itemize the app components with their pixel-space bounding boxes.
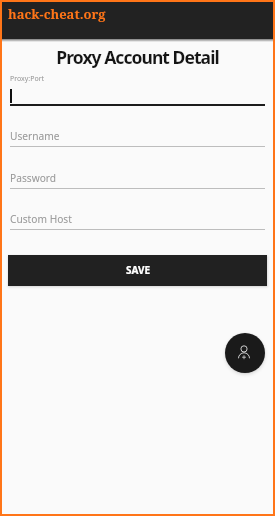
staticText: Custom Host xyxy=(10,212,72,226)
staticText: Proxy Account Detail xyxy=(56,45,219,69)
button[interactable]: Add proxy account xyxy=(225,333,265,373)
button[interactable]: Password xyxy=(2,168,273,192)
staticText: Password xyxy=(10,171,57,185)
staticText: Proxy:Port xyxy=(10,74,45,84)
button[interactable]: Custom Host xyxy=(2,209,273,233)
staticText: hack-cheat.org xyxy=(8,5,106,23)
staticText: SAVE xyxy=(126,263,150,277)
button[interactable]: Proxy:Port xyxy=(2,68,273,108)
staticText: Username xyxy=(10,129,60,143)
button[interactable]: SAVE xyxy=(8,255,267,286)
button[interactable]: Username xyxy=(2,126,273,150)
